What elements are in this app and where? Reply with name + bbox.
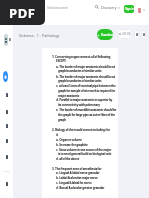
staticText: b. Labial & alveolar major nerve <box>56 176 98 180</box>
button[interactable]: More options <box>141 30 146 39</box>
button[interactable]: Annotate <box>3 71 8 82</box>
button[interactable]: Account <box>138 8 141 13</box>
button[interactable]: Search <box>92 2 101 11</box>
staticText: e. The border of mandible anatomic shoul… <box>56 108 117 112</box>
staticText: c. Sinus volume in one source of the maj… <box>56 148 112 152</box>
staticText: Sign in <box>125 7 134 11</box>
staticText: a. The border of major anatomic should b… <box>56 65 115 69</box>
staticText: EXCEPT: <box>56 59 67 63</box>
button[interactable]: Tool 4 <box>2 136 11 145</box>
staticText: c. at least 5 mm of terminal pipe betwee… <box>56 84 116 88</box>
staticText: 2. Biology of the mould correct includin… <box>52 128 110 132</box>
button[interactable]: Tool 6 <box>2 179 11 188</box>
staticText: Discovery <box>101 5 117 10</box>
staticText: graph for sample of site work is require… <box>58 89 115 93</box>
staticText: 1. Concerning organ connect, all of foll… <box>52 55 111 59</box>
staticText: b. Increase the graphite <box>56 143 88 147</box>
staticText: Select document <box>47 6 68 10</box>
staticText: Sickness - 1 - Pathology <box>19 33 60 38</box>
staticText: a. Lingual & labial nerve granular <box>56 171 100 175</box>
staticText: the graph for large pipe as outer fibre … <box>58 113 115 117</box>
staticText: d. Parallel to major anatomic in superio… <box>56 98 113 102</box>
staticText: it <box>56 133 58 137</box>
button[interactable]: Tool 2 <box>2 107 11 116</box>
staticText: PDF <box>9 4 36 22</box>
button[interactable]: Tool 1 <box>2 90 11 99</box>
button[interactable]: Page 1 thumbnail <box>4 34 8 46</box>
staticText: its connectivity with pulmonary <box>58 103 100 107</box>
button[interactable]: Tool 5 <box>2 152 11 161</box>
staticText: 3. The frequent seen of anesthesia for <box>52 167 102 171</box>
staticText: major anatomic <box>58 94 80 98</box>
button[interactable]: Discovery <box>101 2 120 13</box>
staticText: d. all of the above <box>56 157 80 161</box>
staticText: is to need general build on biological u… <box>58 152 112 156</box>
staticText: 435 KB <box>122 32 131 36</box>
staticText: c. Lingual & labial for nerve <box>56 181 92 185</box>
button[interactable]: Print <box>134 30 139 39</box>
button[interactable]: 435 KB <box>118 29 131 39</box>
button[interactable]: PDF <box>0 0 45 25</box>
button[interactable]: Tool 3 <box>2 121 11 130</box>
button[interactable]: Sign in <box>124 5 134 13</box>
staticText: a. Organ or volume <box>56 138 82 142</box>
button[interactable]: Download <box>97 29 113 40</box>
staticText: Download <box>101 33 113 37</box>
staticText: d. Buccal & alveolar greater granular <box>56 186 105 190</box>
staticText: graph <box>58 118 66 122</box>
staticText: graph boundaries of similar units <box>58 69 102 73</box>
staticText: graph boundaries of similar units <box>58 79 102 83</box>
staticText: b. The border of major anatomic should b… <box>56 75 115 79</box>
